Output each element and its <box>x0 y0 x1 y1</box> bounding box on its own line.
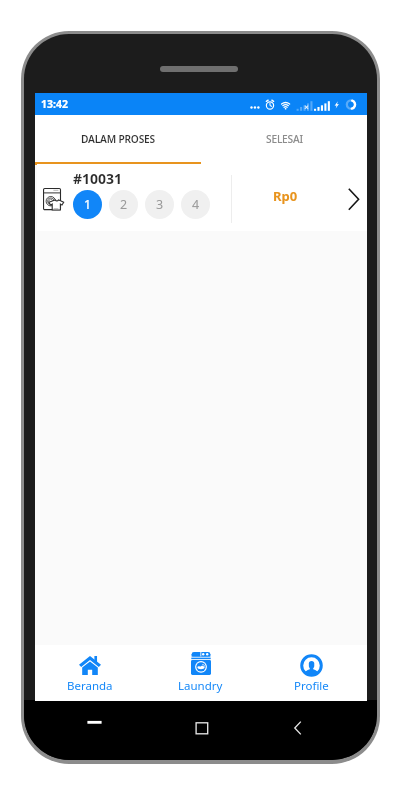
staticText: 2 <box>120 196 128 213</box>
button[interactable]: Profile <box>256 645 367 701</box>
staticText: 13:42 <box>41 97 68 111</box>
button[interactable]: Beranda <box>35 645 145 701</box>
button[interactable]: #10031 <box>37 164 367 231</box>
button[interactable]: SELESAI <box>201 115 367 162</box>
staticText: #10031 <box>73 169 123 188</box>
button[interactable]: DALAM PROSES <box>35 115 201 162</box>
staticText: DALAM PROSES <box>81 132 155 146</box>
button[interactable]: 1 <box>73 190 102 219</box>
staticText: 4 <box>192 196 200 213</box>
other: Open order <box>348 188 360 211</box>
button[interactable]: 3 <box>145 190 174 219</box>
staticText: SELESAI <box>266 132 303 146</box>
button[interactable]: Laundry <box>145 645 256 701</box>
staticText: Laundry <box>178 678 223 694</box>
staticText: Rp0 <box>273 187 298 205</box>
staticText: 1 <box>84 196 92 213</box>
button[interactable]: 4 <box>181 190 210 219</box>
staticText: Beranda <box>67 678 113 694</box>
staticText: 3 <box>156 196 164 213</box>
staticText: Profile <box>294 678 329 694</box>
button[interactable]: 2 <box>109 190 138 219</box>
